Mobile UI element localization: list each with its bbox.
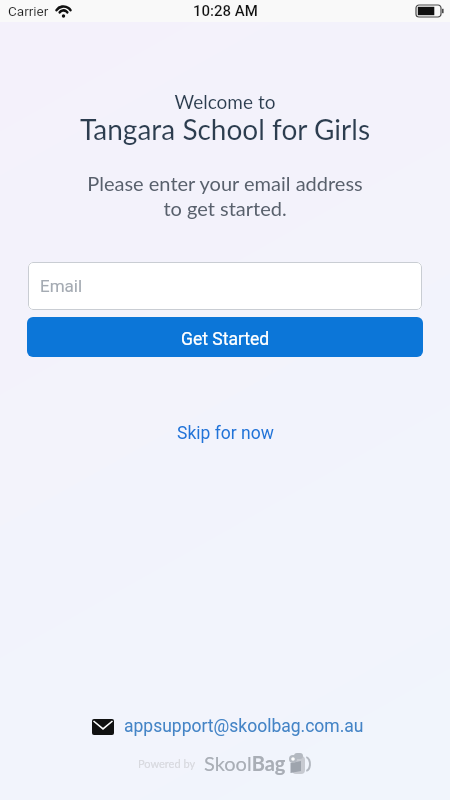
staticText: appsupport@skoolbag.com.au	[124, 716, 364, 737]
staticText: Skip for now	[177, 423, 274, 444]
button[interactable]: Get Started	[27, 317, 423, 357]
staticText: Tangara School for Girls	[0, 112, 450, 146]
button[interactable]: appsupport@skoolbag.com.au	[92, 716, 364, 737]
button[interactable]: Skip for now	[177, 423, 274, 444]
staticText: Carrier	[8, 3, 49, 19]
staticText: Please enter your email address to get s…	[0, 171, 450, 221]
staticText: SkoolBag	[204, 751, 286, 775]
staticText: 10:28 AM	[193, 2, 258, 20]
staticText: Get Started	[181, 329, 270, 350]
staticText: Email	[40, 276, 83, 296]
button[interactable]: Email	[28, 262, 422, 310]
staticText: Welcome to	[0, 90, 450, 113]
staticText: Powered by	[138, 757, 196, 770]
